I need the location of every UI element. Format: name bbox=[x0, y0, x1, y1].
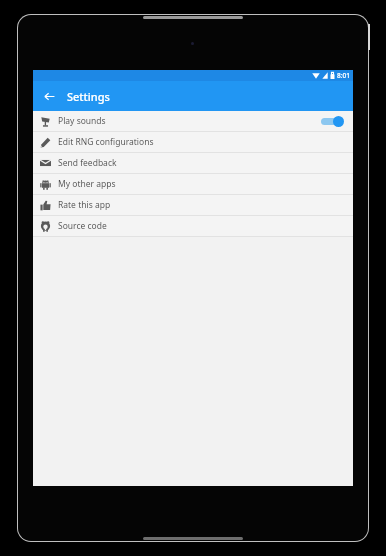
staticText: Play sounds bbox=[58, 115, 106, 127]
staticText: Send feedback bbox=[58, 157, 117, 169]
button[interactable]: Rate this app bbox=[33, 195, 353, 215]
button[interactable]: Edit RNG configurations bbox=[33, 132, 353, 152]
staticText: Settings bbox=[67, 89, 110, 104]
button[interactable]: Send feedback bbox=[33, 153, 353, 173]
button[interactable]: Play sounds bbox=[33, 111, 353, 131]
button[interactable]: Back bbox=[39, 86, 59, 106]
staticText: Source code bbox=[58, 220, 107, 232]
staticText: 8:01 bbox=[337, 71, 350, 80]
staticText: Edit RNG configurations bbox=[58, 136, 154, 148]
button[interactable]: Source code bbox=[33, 216, 353, 236]
staticText: My other apps bbox=[58, 178, 116, 190]
button[interactable]: Play sounds toggle bbox=[319, 114, 345, 128]
button[interactable]: My other apps bbox=[33, 174, 353, 194]
staticText: Rate this app bbox=[58, 199, 111, 211]
